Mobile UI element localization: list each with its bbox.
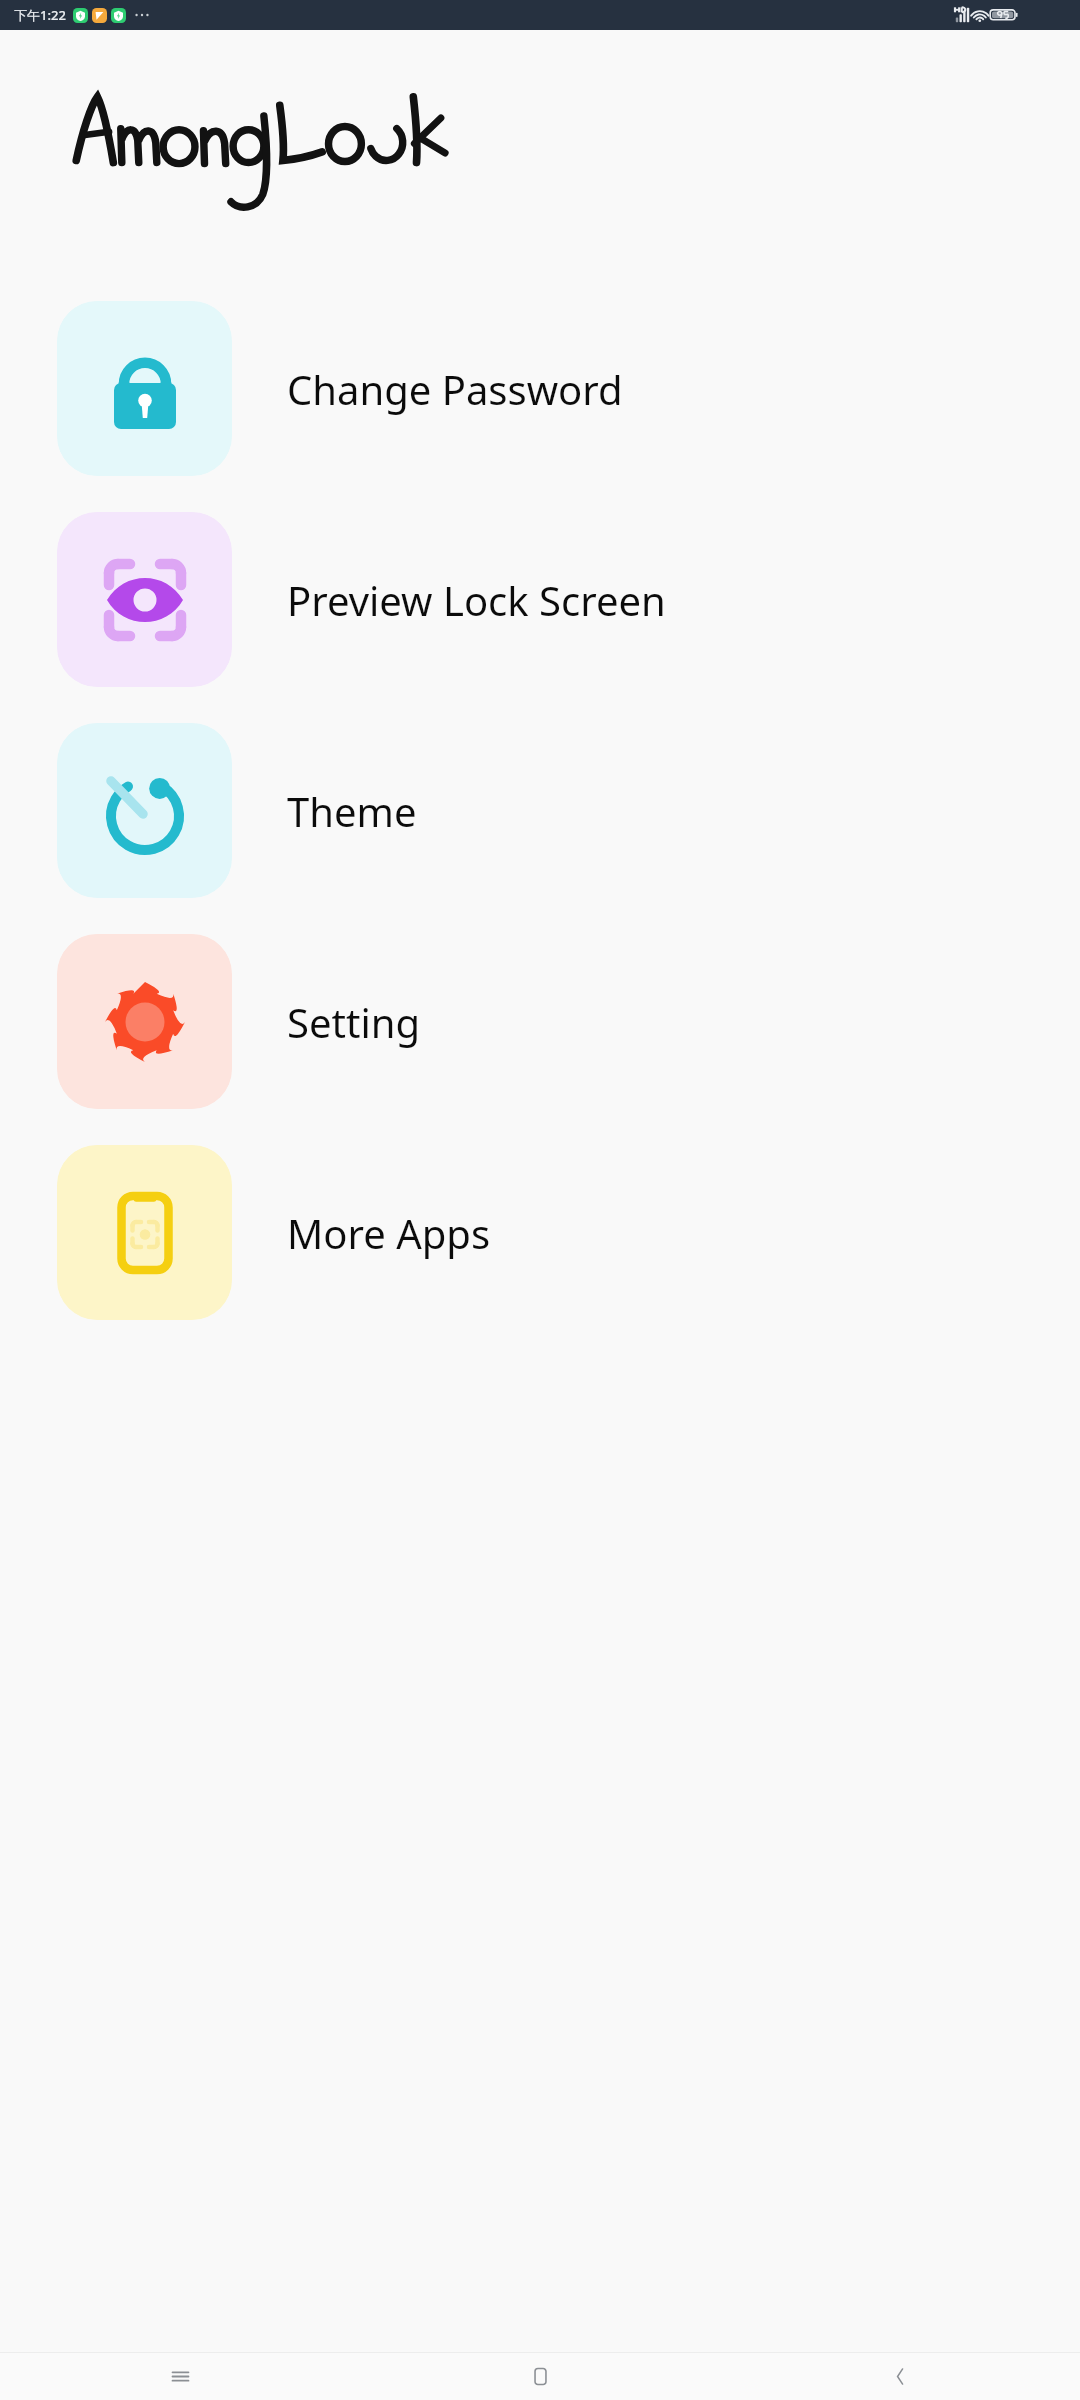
staticText: Preview Lock Screen bbox=[287, 573, 666, 627]
button[interactable]: Setting bbox=[0, 925, 1080, 1118]
staticText: More Apps bbox=[287, 1206, 491, 1260]
staticText: Setting bbox=[287, 995, 421, 1049]
button[interactable]: More Apps bbox=[0, 1136, 1080, 1329]
staticText: Theme bbox=[287, 784, 417, 838]
button[interactable]: Recent apps bbox=[0, 2353, 360, 2400]
button[interactable]: Change Password bbox=[0, 292, 1080, 485]
button[interactable]: Home bbox=[360, 2353, 720, 2400]
staticText: Change Password bbox=[287, 362, 623, 416]
staticText: 下午1:22 bbox=[14, 6, 66, 24]
button[interactable]: Back bbox=[720, 2353, 1080, 2400]
button[interactable]: Preview Lock Screen bbox=[0, 503, 1080, 696]
button[interactable]: Theme bbox=[0, 714, 1080, 907]
